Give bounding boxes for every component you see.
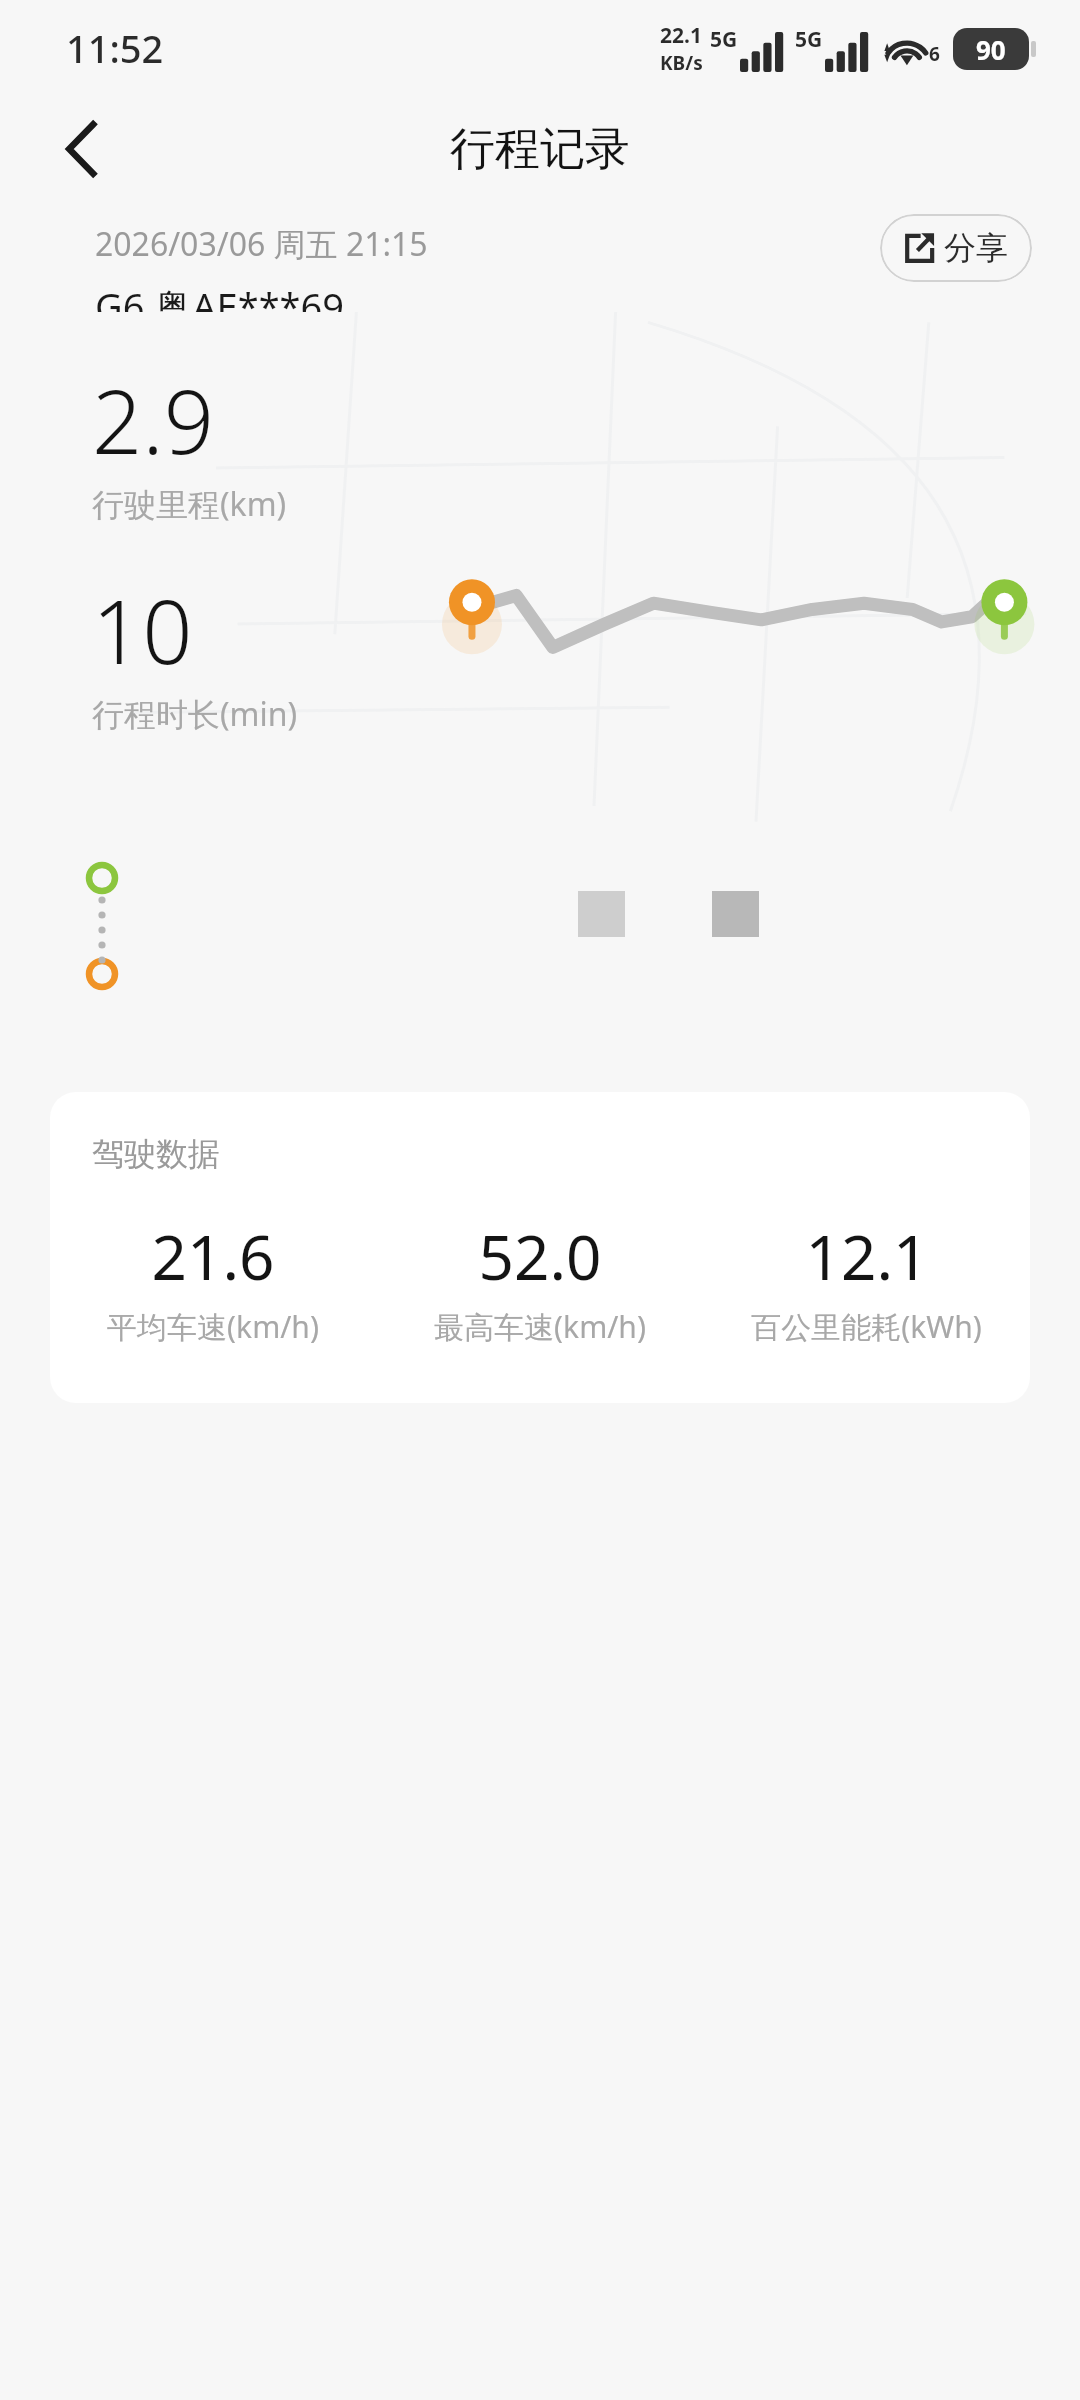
staticText: 最高车速(km/h)	[434, 1306, 646, 1347]
staticText: 5G	[710, 25, 738, 54]
staticText: 行驶里程(km)	[92, 482, 287, 526]
button[interactable]: 分享	[880, 214, 1032, 282]
staticText: 52.0	[478, 1214, 602, 1298]
staticText: 22.1	[660, 21, 702, 50]
staticText: 2026/03/06 周五 21:15	[95, 222, 428, 266]
staticText: 21.6	[151, 1214, 275, 1298]
staticText: 10	[92, 570, 193, 690]
staticText: 6	[929, 41, 940, 67]
staticText: 行程记录	[450, 121, 630, 178]
staticText: 行程时长(min)	[92, 692, 298, 736]
staticText: 11:52	[66, 22, 164, 74]
staticText: 5G	[795, 25, 823, 54]
staticText: KB/s	[660, 50, 703, 76]
staticText: 2.9	[92, 360, 214, 480]
button[interactable]: 驾驶数据	[50, 1092, 1030, 1403]
staticText: 分享	[944, 228, 1008, 268]
staticText: 12.1	[805, 1214, 929, 1298]
staticText: 平均车速(km/h)	[107, 1306, 319, 1347]
staticText: 百公里能耗(kWh)	[751, 1306, 982, 1347]
staticText: 驾驶数据	[92, 1134, 220, 1174]
button[interactable]: Back	[38, 105, 126, 193]
staticText: G6 粤AE***69	[95, 280, 344, 312]
staticText: 90	[976, 32, 1006, 67]
